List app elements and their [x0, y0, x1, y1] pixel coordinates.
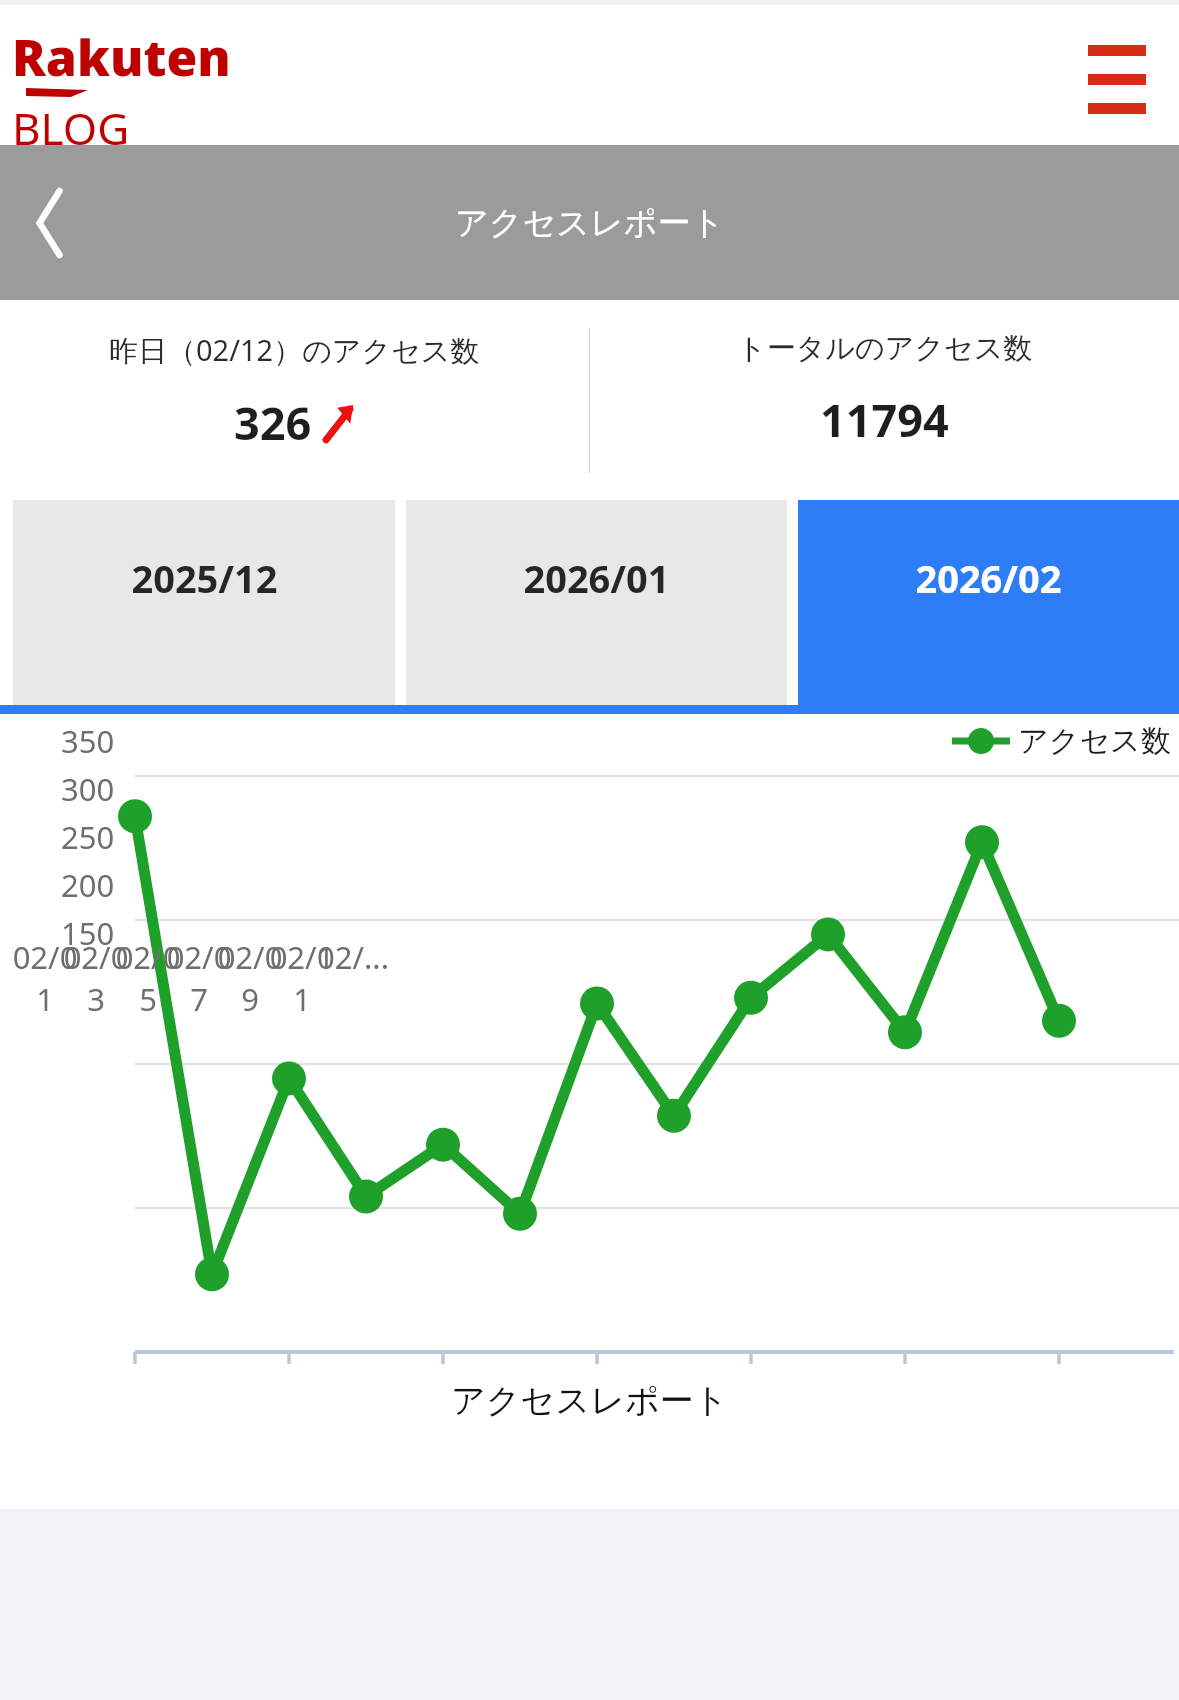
staticText: 300 [61, 768, 115, 810]
button[interactable]: 2026/01 [406, 500, 787, 705]
staticText: 2025/12 [131, 552, 278, 604]
staticText: 昨日（02/12）のアクセス数 [109, 330, 480, 370]
staticText: 02/07 [161, 936, 237, 1020]
button[interactable]: Back [0, 168, 96, 278]
staticText: 11794 [820, 389, 949, 450]
staticText: 02/05 [110, 936, 186, 1020]
button[interactable]: Menu [1088, 43, 1146, 91]
staticText: 326 [234, 392, 312, 453]
staticText: 2026/02 [915, 552, 1062, 604]
button[interactable]: 2025/12 [13, 500, 395, 705]
staticText: 02/11 [264, 936, 340, 1020]
staticText: 02/01 [7, 936, 83, 1020]
staticText: アクセス数 [1018, 722, 1171, 760]
staticText: 02/... [317, 936, 389, 978]
staticText: 2026/01 [523, 552, 670, 604]
staticText: 02/09 [212, 936, 288, 1020]
staticText: 200 [61, 864, 115, 906]
staticText: 250 [61, 816, 115, 858]
staticText: アクセスレポート [451, 1379, 729, 1422]
staticText: BLOG [12, 98, 130, 158]
staticText: 02/03 [58, 936, 134, 1020]
button[interactable]: 2026/02 [798, 500, 1179, 705]
staticText: Rakuten [12, 23, 231, 91]
staticText: 350 [61, 720, 115, 762]
staticText: アクセスレポート [455, 202, 725, 244]
staticText: 150 [61, 912, 115, 954]
staticText: トータルのアクセス数 [737, 330, 1033, 367]
